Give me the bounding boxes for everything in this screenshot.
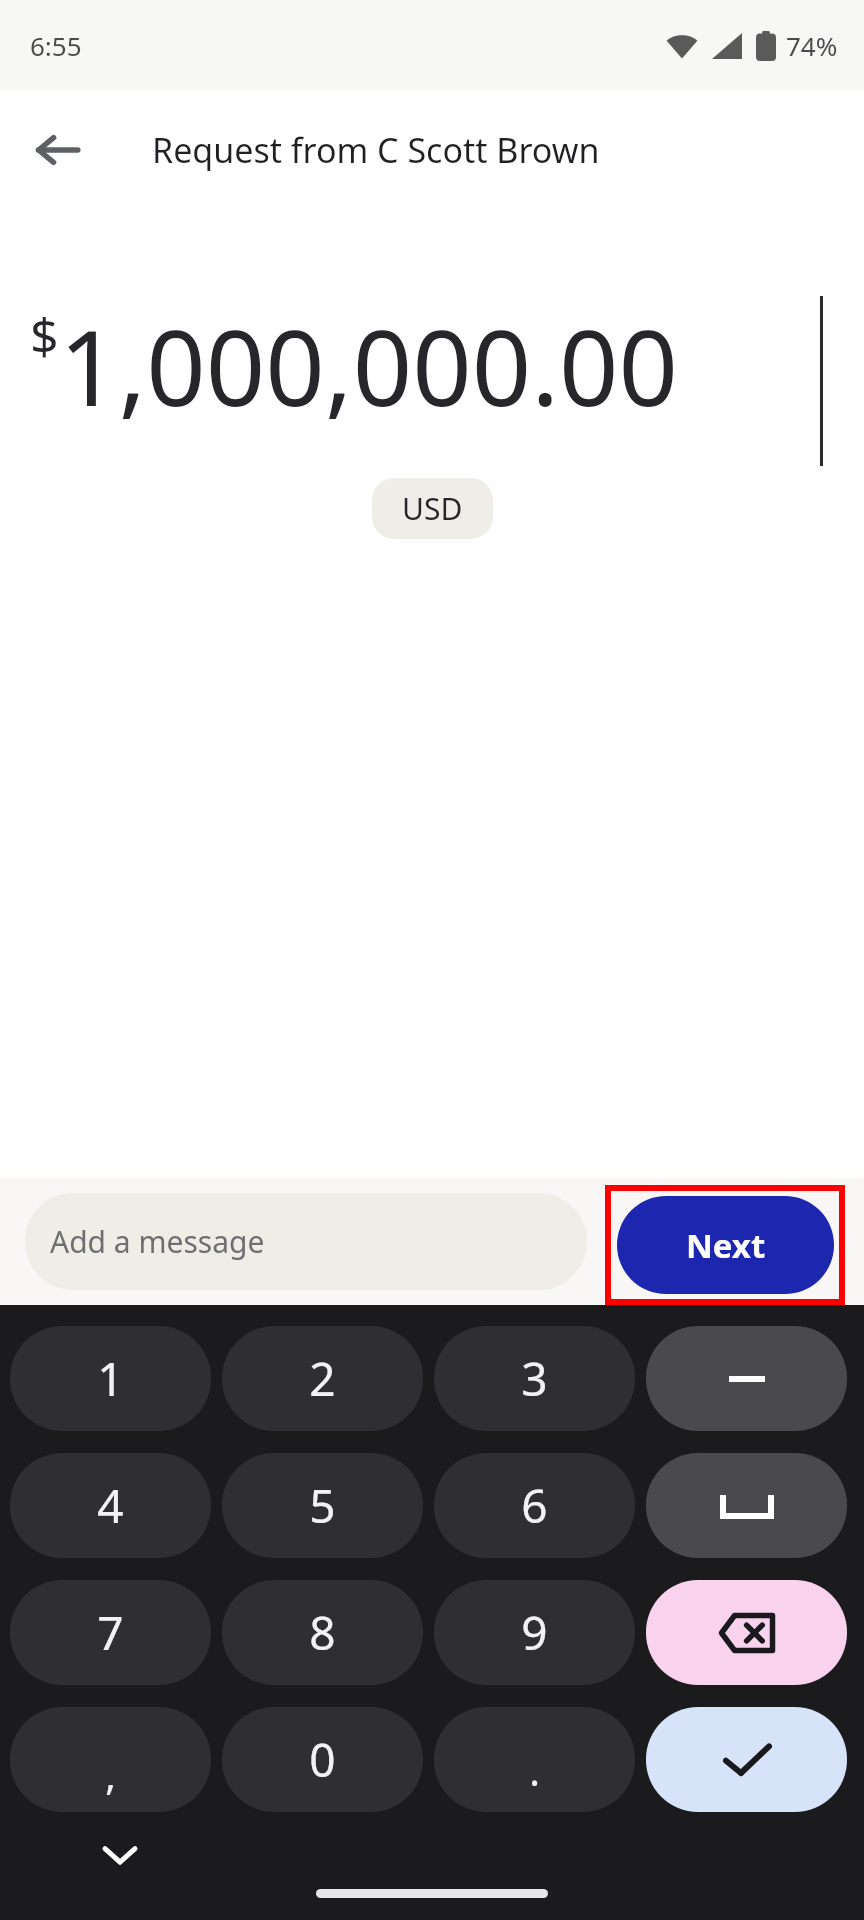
staticText: 4 <box>97 1474 124 1537</box>
staticText: 3 <box>521 1347 548 1410</box>
button[interactable]: 9 <box>434 1580 635 1685</box>
staticText: Request from C Scott Brown <box>152 127 600 173</box>
button[interactable]: Back <box>18 110 98 190</box>
button[interactable]: Hide keyboard <box>90 1825 150 1885</box>
staticText: 5 <box>309 1474 336 1537</box>
button[interactable]: . <box>434 1707 635 1812</box>
staticText: $ <box>30 301 59 369</box>
button[interactable]: 3 <box>434 1326 635 1431</box>
button[interactable]: Add a message <box>25 1193 587 1290</box>
staticText: USD <box>402 488 463 529</box>
staticText: , <box>105 1747 116 1801</box>
button[interactable]: 7 <box>10 1580 211 1685</box>
button[interactable]: , <box>10 1707 211 1812</box>
staticText: 9 <box>521 1601 548 1664</box>
button[interactable]: USD <box>372 478 493 539</box>
button[interactable]: 0 <box>222 1707 423 1812</box>
button[interactable]: 4 <box>10 1453 211 1558</box>
staticText: 2 <box>309 1347 336 1410</box>
staticText: 0 <box>309 1728 336 1791</box>
button[interactable]: Done <box>646 1707 847 1812</box>
staticText: Next <box>686 1223 766 1268</box>
button[interactable]: Space <box>646 1453 847 1558</box>
button[interactable]: 2 <box>222 1326 423 1431</box>
staticText: 7 <box>97 1601 124 1664</box>
staticText: 1,000,000.00 <box>59 295 679 437</box>
button[interactable]: 5 <box>222 1453 423 1558</box>
staticText: Add a message <box>50 1221 265 1262</box>
button[interactable]: Dash <box>646 1326 847 1431</box>
staticText: 1 <box>97 1347 124 1410</box>
button[interactable]: 6 <box>434 1453 635 1558</box>
staticText: . <box>529 1743 540 1797</box>
staticText: 8 <box>309 1601 336 1664</box>
button[interactable]: Backspace <box>646 1580 847 1685</box>
button[interactable]: Next <box>617 1196 834 1294</box>
button[interactable]: 8 <box>222 1580 423 1685</box>
staticText: 74% <box>786 28 838 63</box>
staticText: 6 <box>521 1474 548 1537</box>
button[interactable]: 1 <box>10 1326 211 1431</box>
staticText: 6:55 <box>30 28 82 63</box>
